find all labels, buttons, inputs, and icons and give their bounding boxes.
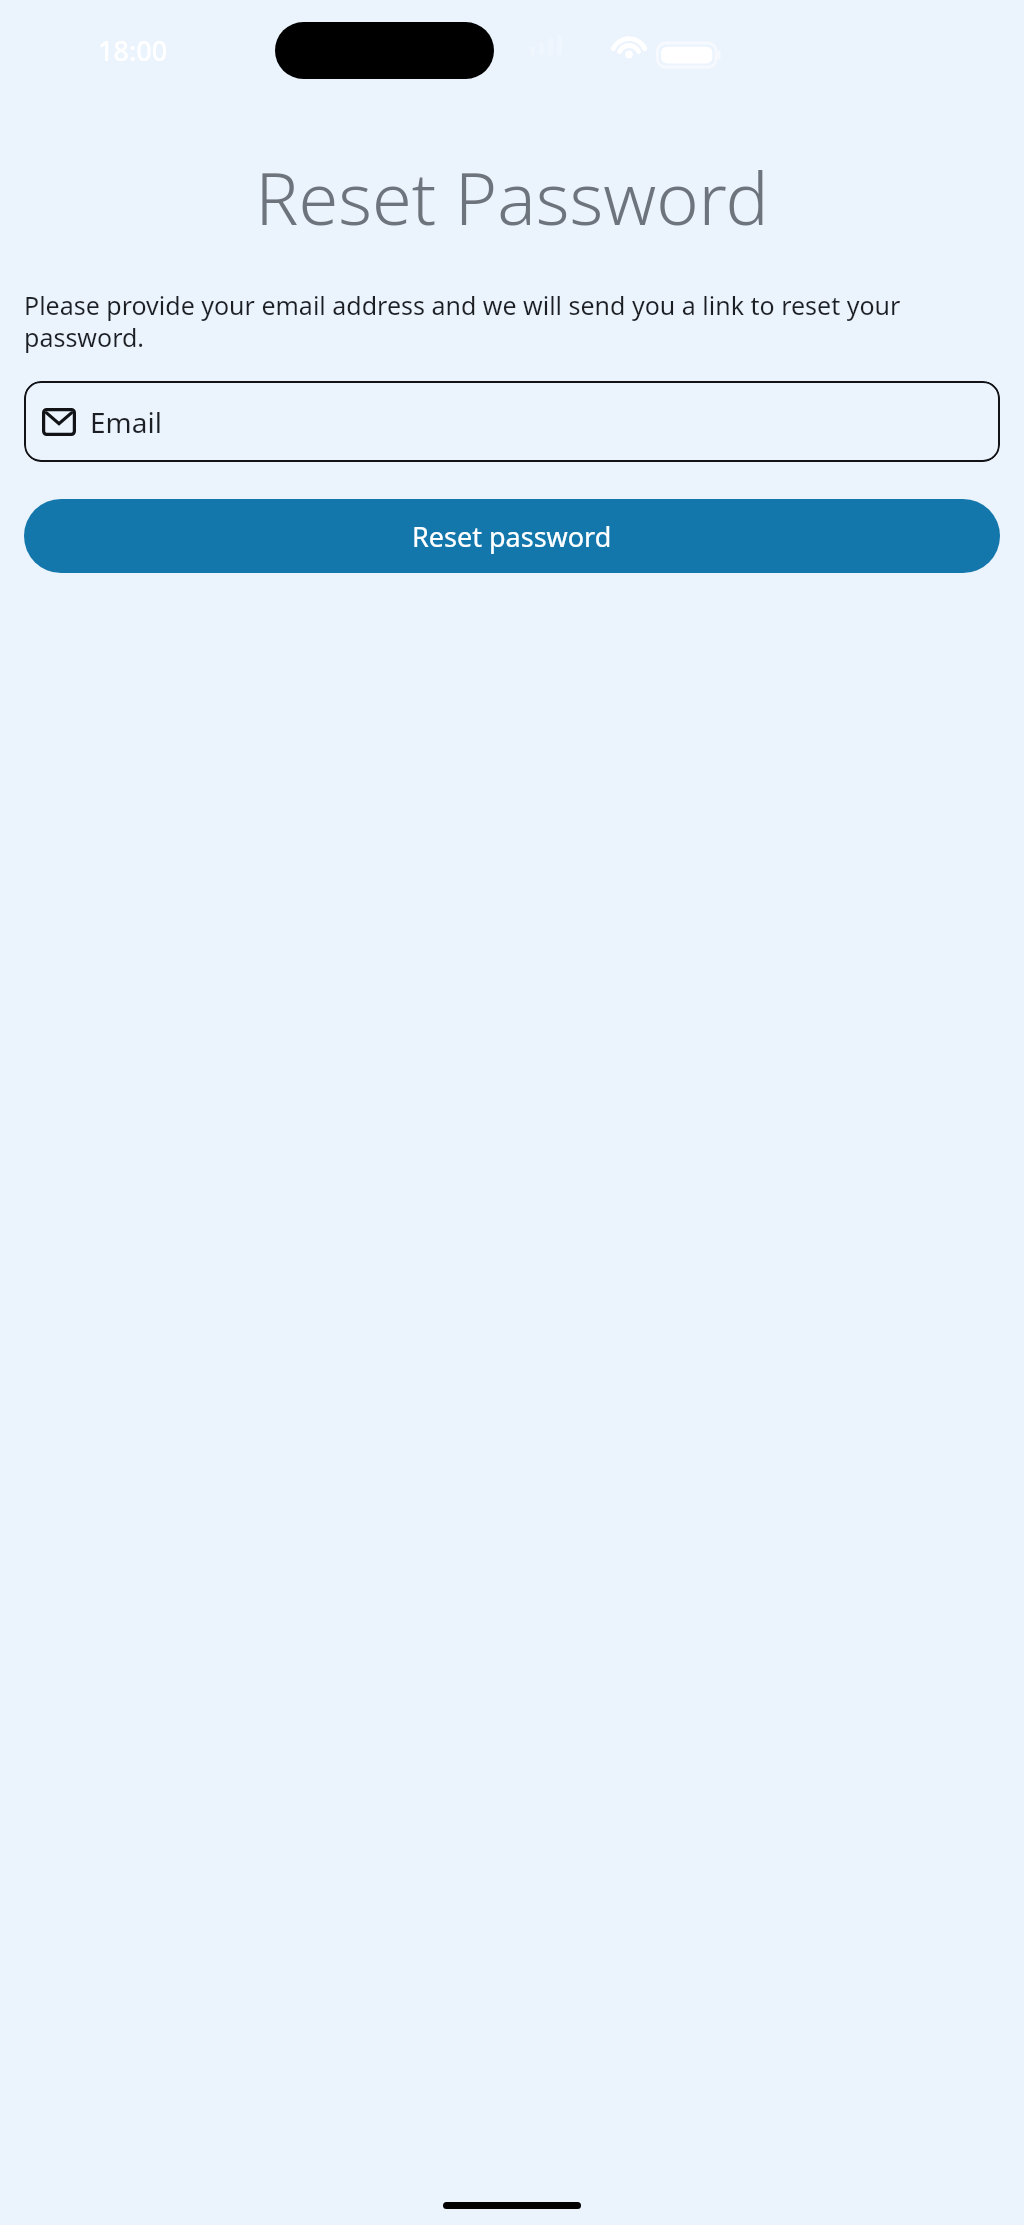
staticText: 18:00	[98, 32, 168, 69]
staticText: Email	[90, 403, 162, 441]
staticText: Please provide your email address and we…	[24, 288, 1002, 354]
staticText: Reset Password	[0, 148, 1024, 246]
staticText: Reset password	[412, 518, 612, 555]
button[interactable]: Reset password	[24, 499, 1000, 573]
button[interactable]: Email	[24, 381, 1000, 462]
